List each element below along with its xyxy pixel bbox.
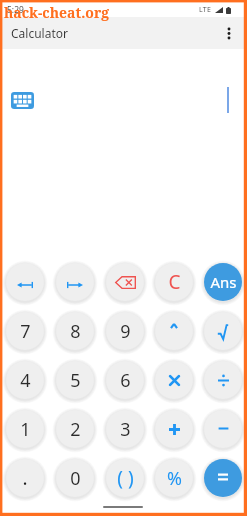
staticText: Calculator bbox=[11, 25, 68, 41]
button[interactable]: Divide bbox=[204, 361, 242, 399]
button[interactable]: 9 bbox=[106, 312, 144, 350]
button[interactable]: Square root bbox=[204, 312, 242, 350]
button[interactable]: Equals bbox=[204, 459, 242, 497]
staticText: 1 bbox=[20, 417, 31, 442]
staticText: 2 bbox=[70, 417, 81, 442]
staticText: 5:29 bbox=[7, 4, 24, 16]
button[interactable]: ( ) bbox=[106, 459, 144, 497]
button[interactable]: Ans bbox=[204, 263, 242, 301]
button[interactable]: Minus bbox=[204, 410, 242, 448]
button[interactable]: 8 bbox=[56, 312, 94, 350]
button[interactable]: Multiply bbox=[155, 361, 193, 399]
button[interactable]: 5 bbox=[56, 361, 94, 399]
button[interactable]: 4 bbox=[6, 361, 44, 399]
button[interactable]: Power bbox=[155, 312, 193, 350]
button[interactable]: C bbox=[155, 263, 193, 301]
staticText: hack-cheat.org bbox=[4, 3, 110, 22]
staticText: 3 bbox=[120, 417, 131, 442]
button[interactable]: Move cursor right bbox=[56, 263, 94, 301]
button[interactable]: 1 bbox=[6, 410, 44, 448]
button[interactable]: 6 bbox=[106, 361, 144, 399]
staticText: % bbox=[167, 466, 182, 491]
button[interactable]: More options bbox=[218, 22, 240, 44]
staticText: Ans bbox=[210, 272, 237, 292]
button[interactable]: 2 bbox=[56, 410, 94, 448]
staticText: . bbox=[22, 465, 28, 491]
button[interactable]: . bbox=[6, 459, 44, 497]
staticText: 6 bbox=[120, 368, 131, 393]
button[interactable]: Move cursor left bbox=[6, 263, 44, 301]
staticText: 8 bbox=[70, 319, 81, 344]
staticText: 4 bbox=[20, 368, 31, 393]
staticText: ( ) bbox=[117, 465, 134, 491]
staticText: 0 bbox=[70, 466, 81, 491]
staticText: 9 bbox=[120, 319, 131, 344]
staticText: 5 bbox=[70, 368, 81, 393]
button[interactable]: Delete bbox=[106, 263, 144, 301]
button[interactable]: Show keyboard bbox=[5, 88, 39, 113]
button[interactable]: 3 bbox=[106, 410, 144, 448]
staticText: C bbox=[168, 269, 181, 295]
button[interactable]: 0 bbox=[56, 459, 94, 497]
button[interactable]: Plus bbox=[155, 410, 193, 448]
button[interactable]: % bbox=[155, 459, 193, 497]
staticText: 7 bbox=[20, 319, 31, 344]
button[interactable]: 7 bbox=[6, 312, 44, 350]
staticText: LTE bbox=[199, 5, 212, 15]
